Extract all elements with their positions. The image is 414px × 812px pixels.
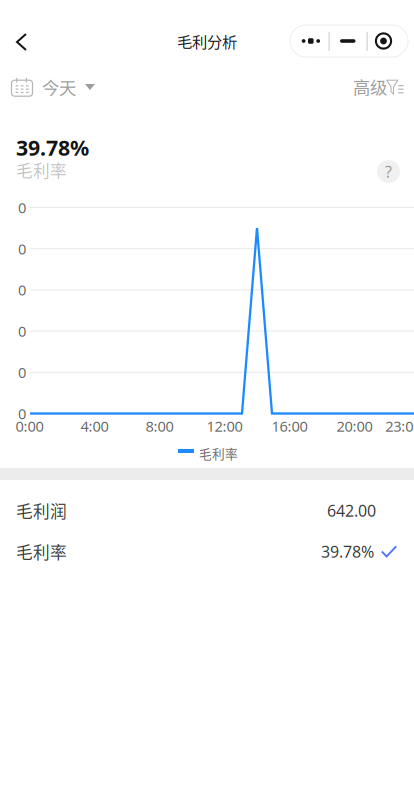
button[interactable]: 毛利率	[0, 531, 414, 572]
staticText: 0	[18, 321, 26, 341]
staticText: 0:00	[15, 416, 43, 436]
button[interactable]: 更多	[290, 25, 329, 57]
staticText: 39.78%	[321, 541, 374, 562]
staticText: 20:00	[336, 416, 372, 436]
staticText: 12:00	[206, 416, 242, 436]
staticText: ?	[385, 161, 392, 182]
staticText: 0	[18, 239, 26, 258]
staticText: 今天	[42, 74, 76, 100]
staticText: 毛利率	[16, 158, 67, 182]
staticText: 4:00	[80, 416, 108, 436]
button[interactable]: 返回	[0, 18, 46, 64]
staticText: 0	[18, 280, 26, 300]
staticText: 16:00	[271, 416, 307, 436]
staticText: 0	[18, 198, 26, 217]
staticText: 毛利润	[16, 498, 67, 522]
button[interactable]: 毛利润	[0, 490, 414, 531]
staticText: 毛利率	[16, 539, 67, 563]
staticText: 0	[18, 363, 26, 382]
staticText: 毛利率	[199, 444, 238, 462]
button[interactable]: 今天	[0, 66, 105, 108]
staticText: 642.00	[327, 500, 376, 521]
staticText: 23:00	[385, 416, 414, 436]
staticText: 39.78%	[16, 133, 89, 162]
button[interactable]: 最小化	[330, 25, 368, 57]
button[interactable]: 高级	[342, 66, 414, 108]
staticText: 高级	[353, 74, 387, 99]
staticText: 8:00	[145, 416, 173, 436]
staticText: 毛利分析	[177, 30, 237, 52]
button[interactable]: 关闭	[368, 25, 408, 57]
staticText: 0	[18, 404, 26, 423]
button[interactable]: 指标说明	[377, 160, 400, 183]
